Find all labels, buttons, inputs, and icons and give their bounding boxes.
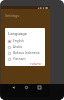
staticText: CANCEL bbox=[30, 63, 43, 65]
staticText: Vietnam bbox=[13, 57, 26, 61]
button[interactable]: Recent apps bbox=[37, 85, 41, 89]
button[interactable]: Arabic bbox=[5, 44, 45, 50]
staticText: Language bbox=[8, 31, 27, 36]
button[interactable]: Vietnam bbox=[5, 56, 45, 62]
button[interactable]: CANCEL bbox=[29, 62, 44, 66]
button[interactable]: English bbox=[5, 38, 45, 44]
staticText: Settings bbox=[5, 13, 19, 18]
staticText: Arabic bbox=[13, 45, 23, 49]
button[interactable]: Home bbox=[24, 85, 28, 89]
button[interactable]: Back bbox=[11, 85, 15, 89]
staticText: English bbox=[13, 39, 24, 43]
staticText: Bahasa Indonesia bbox=[13, 51, 40, 55]
button[interactable]: Bahasa Indonesia bbox=[5, 50, 45, 56]
